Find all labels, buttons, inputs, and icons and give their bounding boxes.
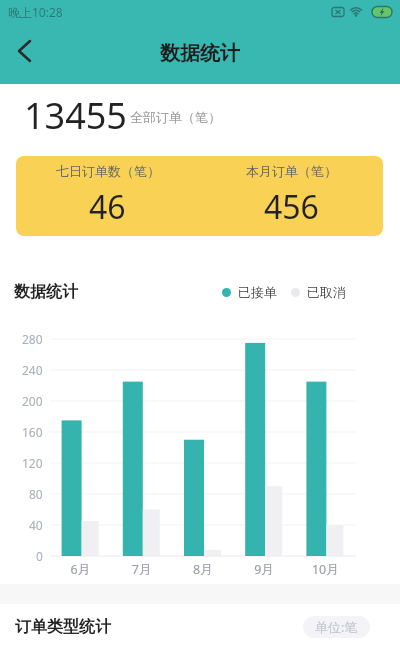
button[interactable]	[0, 27, 48, 75]
staticText: 晚上10:28	[8, 4, 63, 20]
button[interactable]: 单位:笔	[303, 616, 370, 638]
staticText: 13455	[24, 91, 127, 140]
staticText: 456	[264, 185, 319, 229]
button[interactable]: 七日订单数（笔）	[16, 156, 199, 236]
staticText: 全部订单（笔）	[130, 109, 221, 125]
button[interactable]: 已取消	[291, 284, 346, 300]
staticText: 七日订单数（笔）	[56, 163, 160, 179]
staticText: 订单类型统计	[15, 617, 111, 637]
staticText: 数据统计	[160, 41, 240, 66]
staticText: 46	[89, 185, 126, 229]
staticText: 已取消	[307, 284, 346, 300]
button[interactable]: 本月订单（笔）	[199, 156, 383, 236]
staticText: 数据统计	[14, 282, 78, 302]
staticText: 单位:笔	[315, 618, 358, 636]
staticText: 已接单	[238, 284, 277, 300]
staticText: 本月订单（笔）	[246, 163, 337, 179]
button[interactable]: 已接单	[222, 284, 277, 300]
